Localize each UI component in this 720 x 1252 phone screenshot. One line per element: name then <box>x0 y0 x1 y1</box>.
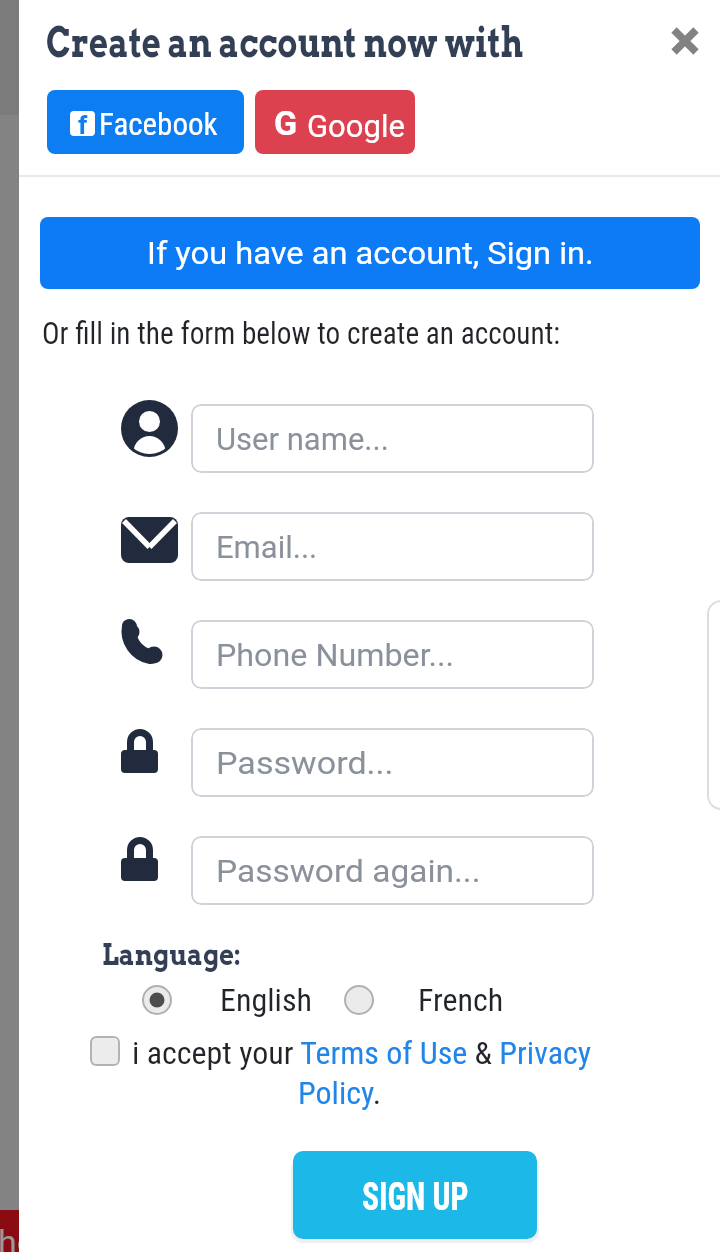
button[interactable]: User name... <box>191 404 594 473</box>
staticText: ho <box>0 1222 17 1252</box>
button[interactable]: English <box>220 981 312 1019</box>
button[interactable] <box>344 985 374 1015</box>
button[interactable]: Password... <box>191 728 594 797</box>
staticText: Facebook <box>99 106 218 142</box>
staticText: Language: <box>102 936 241 972</box>
staticText: G <box>274 103 298 143</box>
button[interactable]: If you have an account, Sign in. <box>40 217 700 289</box>
button[interactable] <box>90 1036 120 1066</box>
staticText: Phone Number... <box>216 637 454 673</box>
button[interactable]: f <box>47 90 244 154</box>
button[interactable]: i accept your Terms of Use & Privacy <box>132 1034 592 1072</box>
button[interactable]: Password again... <box>191 836 594 905</box>
staticText: SIGN UP <box>362 1175 469 1220</box>
staticText: Google <box>307 108 405 144</box>
button[interactable]: G <box>255 90 415 154</box>
button[interactable]: Policy. <box>298 1074 382 1112</box>
staticText: Or fill in the form below to create an a… <box>42 315 561 351</box>
staticText: f <box>78 111 88 135</box>
staticText: Email... <box>216 529 318 565</box>
staticText: Password again... <box>216 853 481 889</box>
button[interactable]: Phone Number... <box>191 620 594 689</box>
button[interactable] <box>142 985 172 1015</box>
staticText: User name... <box>216 421 389 457</box>
staticText: Create an account now with <box>46 17 523 68</box>
button[interactable]: SIGN UP <box>293 1151 537 1239</box>
button[interactable]: French <box>418 981 504 1019</box>
staticText: If you have an account, Sign in. <box>147 234 594 272</box>
button[interactable]: Email... <box>191 512 594 581</box>
staticText: Password... <box>216 745 394 781</box>
button[interactable] <box>663 19 707 63</box>
